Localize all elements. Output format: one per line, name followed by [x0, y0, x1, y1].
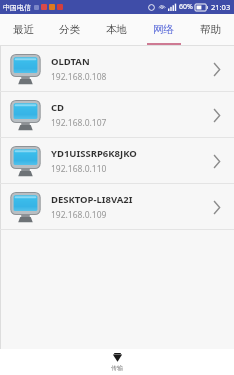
- button[interactable]: 最近: [0, 14, 46, 45]
- button[interactable]: 本地: [93, 14, 140, 45]
- staticText: 21:03: [211, 2, 231, 12]
- staticText: 网络: [153, 23, 174, 36]
- staticText: OLDTAN: [51, 55, 90, 68]
- button[interactable]: 帮助: [187, 14, 234, 45]
- staticText: DESKTOP-LI8VA2I: [51, 193, 133, 206]
- staticText: 中国电信: [3, 3, 31, 12]
- staticText: 帮助: [200, 23, 221, 36]
- staticText: 192.168.0.107: [51, 117, 107, 129]
- staticText: 192.168.0.110: [51, 163, 107, 175]
- staticText: 192.168.0.108: [51, 71, 107, 83]
- button[interactable]: OLDTAN: [0, 46, 234, 91]
- button[interactable]: DESKTOP-LI8VA2I: [0, 184, 234, 229]
- staticText: 60%: [179, 2, 193, 12]
- staticText: 传输: [111, 364, 123, 372]
- button[interactable]: 分类: [46, 14, 93, 45]
- button[interactable]: 网络: [140, 14, 187, 45]
- staticText: 最近: [13, 23, 34, 36]
- button[interactable]: YD1UISSRP6K8JKO: [0, 138, 234, 183]
- button[interactable]: Transfer: [111, 349, 123, 372]
- staticText: CD: [51, 101, 65, 114]
- button[interactable]: CD: [0, 92, 234, 137]
- staticText: 分类: [59, 23, 80, 36]
- staticText: 192.168.0.109: [51, 209, 107, 221]
- staticText: 本地: [106, 23, 127, 36]
- staticText: YD1UISSRP6K8JKO: [51, 147, 137, 160]
